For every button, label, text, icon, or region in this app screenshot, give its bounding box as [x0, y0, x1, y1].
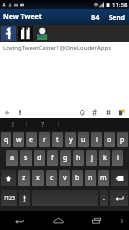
staticText: n [88, 173, 93, 183]
staticText: # [92, 107, 98, 117]
staticText: LovingTweetCaster! @OneLouderApps [3, 44, 112, 52]
button[interactable]: i [91, 132, 102, 147]
staticText: z [22, 173, 26, 183]
staticText: x [36, 173, 40, 183]
button[interactable]: k [99, 150, 110, 166]
button[interactable]: e [26, 132, 37, 147]
staticText: v [63, 173, 67, 183]
staticText: r [43, 135, 46, 145]
staticText: j [91, 153, 93, 163]
button[interactable]: c [46, 170, 57, 186]
staticText: f [51, 153, 54, 163]
staticText: l [117, 153, 119, 163]
staticText: e [29, 135, 34, 145]
staticText: o [107, 135, 112, 145]
button[interactable]: j [86, 150, 97, 166]
staticText: y [69, 135, 73, 145]
button[interactable]: s [20, 150, 32, 166]
button[interactable]: Account one [18, 26, 33, 41]
button[interactable]: q [1, 132, 11, 147]
staticText: 11:58 [112, 1, 128, 9]
staticText: 84 [91, 12, 100, 22]
button[interactable]: Drafts [116, 107, 126, 117]
button[interactable]: Back [0, 211, 39, 230]
button[interactable]: m [98, 170, 109, 186]
button[interactable]: t [52, 132, 63, 147]
staticText: New Tweet [3, 12, 42, 22]
button[interactable]: z [18, 170, 30, 186]
button[interactable]: r [39, 132, 50, 147]
button[interactable]: p [117, 132, 128, 147]
button[interactable]: n [85, 170, 96, 186]
button[interactable]: x [32, 170, 44, 186]
button[interactable]: Mention [103, 107, 113, 117]
button[interactable]: l [112, 150, 123, 166]
staticText: ?123 [4, 195, 15, 202]
staticText: i [96, 135, 98, 145]
button[interactable]: Space [32, 190, 98, 206]
button[interactable]: v [59, 170, 70, 186]
button[interactable]: Backspace [111, 170, 128, 186]
button[interactable]: Twitter account [35, 27, 48, 40]
staticText: b [75, 173, 80, 183]
button[interactable]: Recent apps [77, 211, 115, 230]
staticText: w [16, 135, 22, 145]
button[interactable]: Enter [110, 190, 128, 206]
button[interactable]: Menu [115, 211, 129, 230]
staticText: t [56, 135, 59, 145]
button[interactable]: Facebook account [1, 26, 16, 41]
staticText: . [103, 193, 105, 203]
button[interactable]: f [47, 150, 58, 166]
button[interactable]: y [65, 132, 76, 147]
button[interactable]: d [34, 150, 45, 166]
staticText: d [37, 153, 42, 163]
button[interactable]: u [78, 132, 89, 147]
staticText: u [81, 135, 86, 145]
button[interactable]: Hashtag [90, 107, 100, 117]
button[interactable]: w [13, 132, 24, 147]
button[interactable]: a [6, 150, 18, 166]
staticText: c [50, 173, 54, 183]
button[interactable]: . [100, 190, 108, 206]
button[interactable]: h [73, 150, 84, 166]
button[interactable]: Shift [1, 170, 16, 186]
staticText: p [120, 135, 125, 145]
staticText: q [4, 135, 9, 145]
button[interactable]: Attach [77, 107, 87, 117]
button[interactable]: Take photo [15, 107, 24, 116]
staticText: ? [41, 120, 45, 130]
staticText: m [100, 173, 107, 183]
staticText: ! [12, 120, 14, 130]
button[interactable]: Home [39, 211, 77, 230]
staticText: k [103, 153, 107, 163]
button[interactable]: o [104, 132, 115, 147]
staticText: g [63, 153, 68, 163]
button[interactable]: b [72, 170, 83, 186]
staticText: h [76, 153, 81, 163]
staticText: Send [109, 13, 125, 22]
button[interactable]: Add location [2, 107, 11, 116]
staticText: s [24, 153, 28, 163]
button[interactable]: Send [105, 9, 129, 25]
button[interactable]: ? [27, 118, 58, 131]
button[interactable]: ?123 [1, 190, 17, 206]
button[interactable]: g [60, 150, 71, 166]
staticText: a [10, 153, 15, 163]
button[interactable]: Voice input [19, 190, 30, 206]
button[interactable]: ! [0, 118, 26, 131]
